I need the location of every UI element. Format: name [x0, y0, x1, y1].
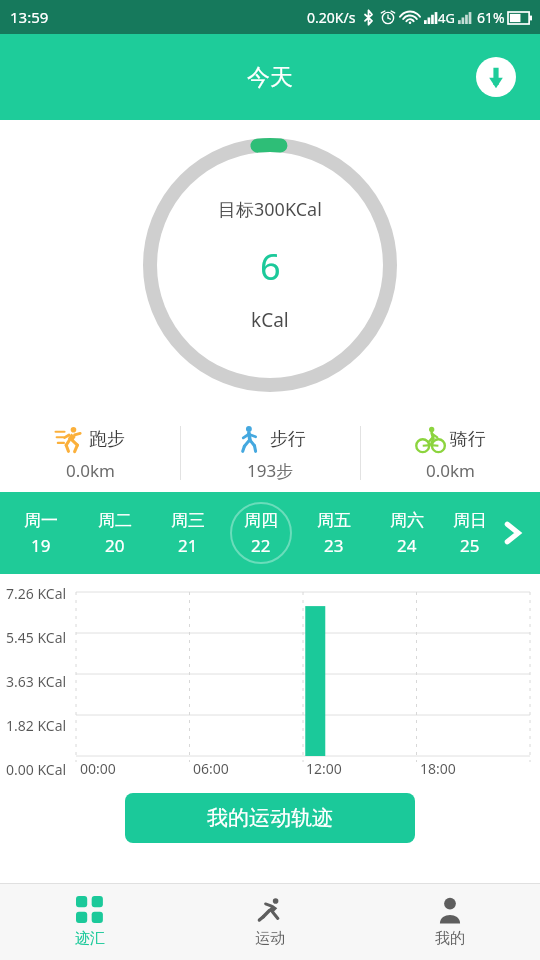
button[interactable]: 我的 [360, 884, 540, 960]
staticText: 18:00 [420, 759, 456, 778]
button[interactable]: 周日 [443, 492, 496, 574]
staticText: 19 [31, 534, 51, 557]
button[interactable]: 周一 [4, 492, 78, 574]
button[interactable]: Next week [490, 511, 534, 555]
staticText: 0.20K/s [307, 8, 356, 27]
staticText: 骑行 [450, 428, 486, 451]
staticText: 周二 [98, 510, 132, 531]
button[interactable]: 周二 [78, 492, 151, 574]
staticText: 4G [438, 9, 455, 27]
button[interactable]: 运动 [180, 884, 360, 960]
staticText: 迹汇 [75, 929, 105, 948]
button[interactable]: 周四 [224, 492, 297, 574]
staticText: 1.82 KCal [6, 716, 67, 735]
staticText: 22 [251, 534, 271, 557]
staticText: 运动 [255, 929, 285, 948]
staticText: 6 [260, 242, 281, 291]
staticText: 周日 [453, 510, 487, 531]
staticText: 我的运动轨迹 [207, 805, 333, 831]
staticText: 周一 [24, 510, 58, 531]
staticText: 21 [178, 534, 198, 557]
button[interactable]: 周三 [151, 492, 224, 574]
button[interactable]: Download [474, 55, 518, 99]
staticText: 跑步 [89, 428, 125, 451]
staticText: 0.00 KCal [6, 760, 67, 779]
staticText: 目标300KCal [218, 197, 322, 222]
staticText: 193步 [247, 459, 294, 482]
staticText: 周四 [244, 510, 278, 531]
button[interactable]: 迹汇 [0, 884, 180, 960]
staticText: 周六 [390, 510, 424, 531]
staticText: 12:00 [306, 759, 342, 778]
staticText: 06:00 [193, 759, 229, 778]
button[interactable]: 跑步 [0, 414, 180, 492]
button[interactable]: 周六 [370, 492, 443, 574]
staticText: 0.0km [426, 459, 475, 482]
staticText: 25 [460, 534, 480, 557]
button[interactable]: 我的运动轨迹 [125, 793, 415, 843]
staticText: 5.45 KCal [6, 628, 67, 647]
staticText: 61% [477, 8, 505, 27]
staticText: 23 [324, 534, 344, 557]
staticText: 3.63 KCal [6, 672, 67, 691]
staticText: 周五 [317, 510, 351, 531]
button[interactable]: 步行 [181, 414, 360, 492]
staticText: 20 [105, 534, 125, 557]
button[interactable]: 骑行 [361, 414, 540, 492]
staticText: 00:00 [80, 759, 116, 778]
staticText: 今天 [247, 63, 293, 92]
staticText: kCal [251, 307, 289, 333]
staticText: 7.26 KCal [6, 584, 67, 603]
button[interactable]: 周五 [297, 492, 370, 574]
staticText: 周三 [171, 510, 205, 531]
staticText: 0.0km [66, 459, 115, 482]
staticText: 步行 [270, 428, 306, 451]
staticText: 24 [397, 534, 417, 557]
staticText: 我的 [435, 929, 465, 948]
staticText: 13:59 [10, 7, 49, 27]
